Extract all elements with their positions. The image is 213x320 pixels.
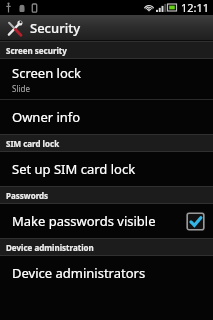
staticText: SIM card lock [6, 138, 60, 149]
staticText: Passwords [6, 190, 49, 201]
button[interactable]: Device administrators [0, 256, 213, 290]
staticText: Set up SIM card lock [12, 160, 136, 178]
staticText: Owner info [12, 108, 81, 126]
staticText: Make passwords visible [12, 212, 156, 230]
button[interactable]: Screen lock [0, 59, 213, 99]
staticText: Security [30, 19, 80, 37]
button[interactable]: Make passwords visible [0, 204, 213, 238]
staticText: Screen lock [12, 64, 81, 82]
staticText: Screen security [6, 45, 67, 56]
staticText: 12:11 [181, 0, 210, 15]
staticText: Slide [12, 83, 30, 94]
other: Settings [6, 20, 23, 37]
button[interactable]: Set up SIM card lock [0, 152, 213, 186]
staticText: Device administration [6, 242, 94, 253]
staticText: Device administrators [12, 264, 146, 282]
button[interactable]: Make passwords visible checkbox [186, 212, 205, 231]
button[interactable]: Owner info [0, 100, 213, 134]
button[interactable]: Settings [0, 15, 213, 41]
